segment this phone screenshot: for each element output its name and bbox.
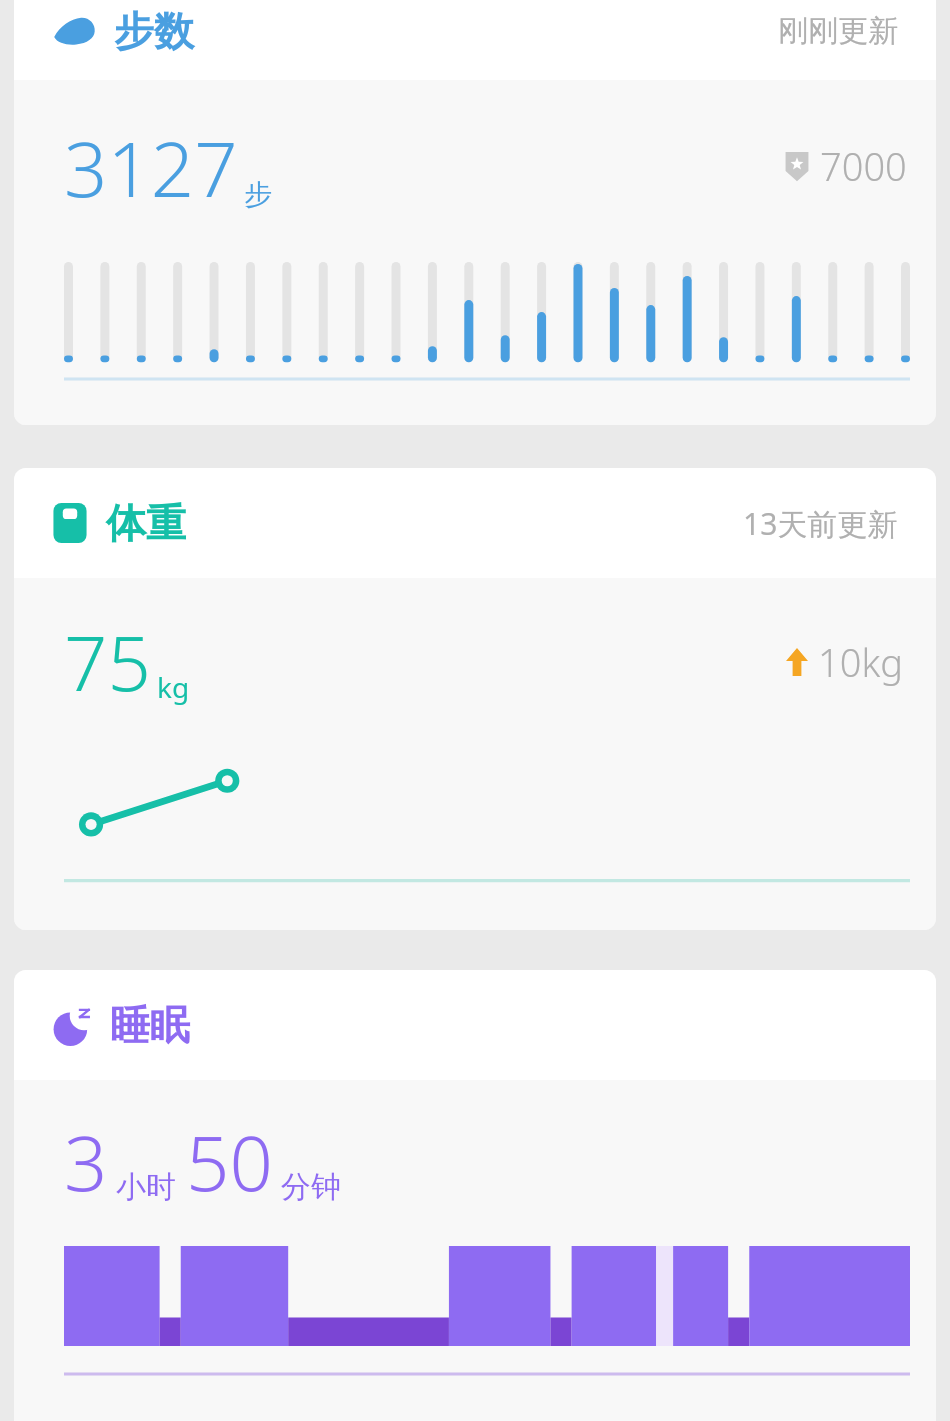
staticText: kg [157, 668, 190, 706]
button[interactable]: Steps [14, 0, 936, 425]
button[interactable]: Sleep [14, 970, 936, 1421]
staticText: 体重 [106, 498, 186, 548]
other: Weight [52, 503, 88, 543]
staticText: 75 [64, 610, 151, 714]
staticText: 睡眠 [110, 1000, 190, 1050]
button[interactable]: Weight [14, 468, 936, 930]
staticText: 分钟 [281, 1168, 341, 1206]
other: Sleep [52, 1004, 92, 1046]
staticText: 刚刚更新 [778, 12, 898, 50]
staticText: 小时 [116, 1168, 176, 1206]
other: Steps [52, 16, 96, 46]
staticText: 步 [244, 177, 272, 212]
staticText: 10kg [818, 636, 903, 688]
staticText: 7000 [820, 140, 907, 192]
staticText: 13天前更新 [743, 503, 898, 544]
staticText: 步数 [114, 6, 194, 56]
staticText: 50 [186, 1110, 273, 1214]
staticText: 3 [64, 1110, 108, 1214]
staticText: 3127 [64, 116, 238, 220]
